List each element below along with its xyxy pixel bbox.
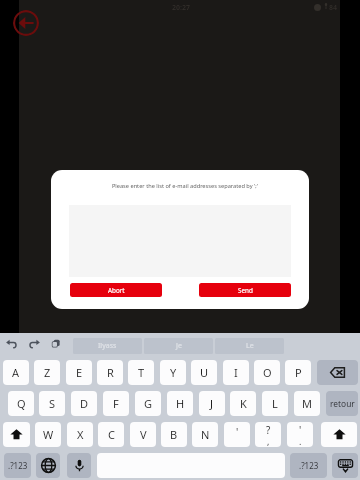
staticText: ': [299, 423, 302, 437]
button[interactable]: Dictate: [67, 453, 91, 478]
staticText: L: [272, 396, 278, 411]
staticText: B: [170, 427, 178, 442]
button[interactable]: F: [103, 391, 129, 416]
button[interactable]: N: [192, 422, 218, 447]
staticText: ,: [267, 435, 270, 447]
button[interactable]: Shift: [3, 422, 30, 447]
button[interactable]: Je: [144, 338, 213, 354]
button[interactable]: Le: [215, 338, 284, 354]
button[interactable]: G: [135, 391, 161, 416]
button[interactable]: Backspace: [317, 360, 358, 385]
button[interactable]: U: [191, 360, 217, 385]
button[interactable]: ': [224, 422, 250, 447]
staticText: Abort: [108, 286, 125, 295]
button[interactable]: I: [223, 360, 249, 385]
staticText: Please enter the list of e-mail addresse…: [64, 182, 306, 190]
staticText: 84: [329, 3, 338, 13]
staticText: .?123: [299, 460, 319, 471]
button[interactable]: Back: [13, 10, 39, 36]
staticText: 20:27: [172, 3, 190, 13]
staticText: X: [77, 427, 84, 442]
staticText: C: [108, 427, 115, 442]
staticText: P: [295, 365, 302, 380]
button[interactable]: Shift: [321, 422, 357, 447]
button[interactable]: Ilyass: [73, 338, 142, 354]
staticText: F: [113, 396, 119, 411]
button[interactable]: Hide keyboard: [332, 453, 358, 478]
staticText: K: [240, 396, 247, 411]
staticText: S: [49, 396, 56, 411]
button[interactable]: Send: [199, 283, 291, 297]
staticText: E: [76, 365, 83, 380]
staticText: Z: [44, 365, 51, 380]
button[interactable]: Undo: [5, 337, 19, 349]
button[interactable]: .?123: [4, 453, 31, 478]
staticText: Y: [170, 365, 177, 380]
button[interactable]: O: [254, 360, 280, 385]
button[interactable]: C: [98, 422, 124, 447]
button[interactable]: Next keyboard: [36, 453, 60, 478]
button[interactable]: ': [287, 422, 313, 447]
button[interactable]: P: [285, 360, 311, 385]
button[interactable]: Z: [34, 360, 60, 385]
staticText: retour: [330, 398, 355, 409]
staticText: J: [210, 396, 214, 411]
staticText: ': [236, 425, 239, 439]
button[interactable]: .?123: [290, 453, 327, 478]
button[interactable]: L: [262, 391, 288, 416]
staticText: Je: [176, 341, 182, 351]
button[interactable]: Q: [8, 391, 34, 416]
staticText: H: [176, 396, 185, 411]
button[interactable]: Paste: [49, 337, 63, 349]
staticText: V: [140, 427, 147, 442]
button[interactable]: W: [35, 422, 61, 447]
button[interactable]: T: [128, 360, 154, 385]
button[interactable]: H: [167, 391, 193, 416]
button[interactable]: D: [71, 391, 97, 416]
staticText: Q: [17, 396, 26, 411]
staticText: W: [43, 427, 54, 442]
staticText: .?123: [8, 460, 28, 471]
staticText: I: [234, 365, 238, 380]
staticText: O: [263, 365, 272, 380]
staticText: D: [80, 396, 89, 411]
button[interactable]: M: [294, 391, 320, 416]
button[interactable]: J: [199, 391, 225, 416]
staticText: A: [12, 365, 20, 380]
staticText: G: [144, 396, 153, 411]
button[interactable]: E: [66, 360, 92, 385]
button[interactable]: Y: [160, 360, 186, 385]
button[interactable]: V: [130, 422, 156, 447]
button[interactable]: retour: [326, 391, 358, 416]
button[interactable]: Abort: [70, 283, 162, 297]
staticText: .: [299, 435, 302, 447]
button[interactable]: B: [161, 422, 187, 447]
staticText: T: [138, 365, 145, 380]
staticText: M: [302, 396, 312, 411]
button[interactable]: R: [97, 360, 123, 385]
staticText: Le: [246, 341, 254, 351]
staticText: R: [107, 365, 114, 380]
button[interactable]: K: [230, 391, 256, 416]
staticText: U: [200, 365, 209, 380]
button[interactable]: Redo: [27, 337, 41, 349]
staticText: Ilyass: [98, 341, 117, 351]
staticText: Send: [238, 286, 253, 295]
staticText: ?: [266, 423, 271, 437]
button[interactable]: X: [67, 422, 93, 447]
staticText: N: [201, 427, 210, 442]
button[interactable]: S: [39, 391, 65, 416]
button[interactable]: A: [3, 360, 29, 385]
button[interactable]: ?: [255, 422, 281, 447]
